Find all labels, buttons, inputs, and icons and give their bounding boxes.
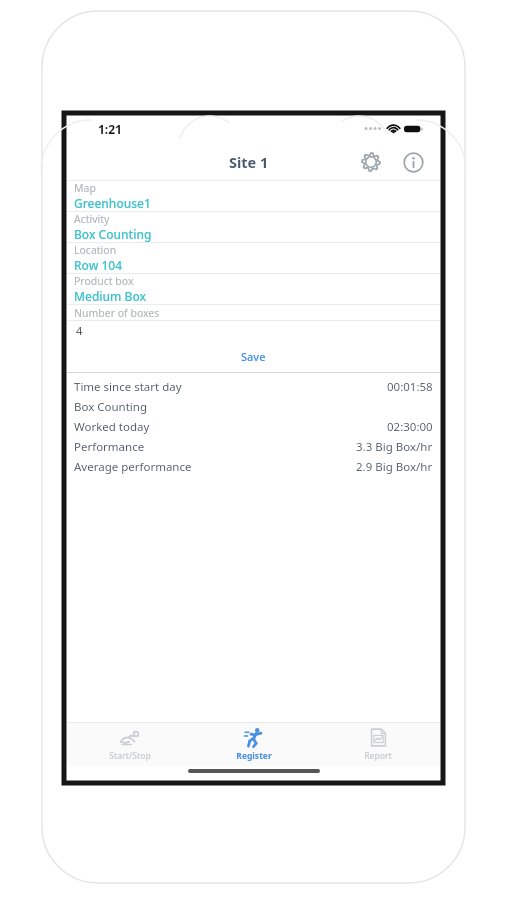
button[interactable]: Worked today	[67, 417, 440, 437]
button[interactable]: Average performance	[67, 457, 440, 477]
button[interactable]: Save	[221, 347, 286, 365]
button[interactable]: Number of boxes	[67, 304, 440, 339]
staticText: Register	[236, 750, 272, 762]
button[interactable]: Product box	[67, 273, 440, 304]
staticText: Box Counting	[74, 226, 152, 242]
button[interactable]: Time since start day	[67, 377, 440, 397]
staticText: Map	[74, 181, 96, 195]
staticText: Row 104	[74, 257, 123, 273]
button[interactable]: Map	[67, 180, 440, 211]
button[interactable]: Performance	[67, 437, 440, 457]
staticText: 02:30:00	[387, 419, 433, 435]
staticText: Start/Stop	[109, 750, 151, 762]
button[interactable]: Settings	[355, 146, 387, 178]
staticText: 2.9 Big Box/hr	[356, 459, 433, 475]
button[interactable]: Info	[397, 146, 429, 178]
staticText: Worked today	[74, 419, 150, 435]
staticText: Box Counting	[74, 399, 148, 415]
staticText: Product box	[74, 274, 134, 288]
button[interactable]: Activity	[67, 211, 440, 242]
staticText: Medium Box	[74, 288, 147, 304]
staticText: Greenhouse1	[74, 195, 151, 211]
staticText: Time since start day	[74, 379, 182, 395]
staticText: Activity	[74, 212, 110, 226]
staticText: 4	[76, 323, 83, 338]
button[interactable]: Register	[192, 723, 316, 766]
staticText: 3.3 Big Box/hr	[356, 439, 433, 455]
staticText: 00:01:58	[387, 379, 433, 395]
staticText: Save	[241, 349, 266, 363]
staticText: Report	[364, 750, 392, 762]
staticText: Site 1	[229, 152, 269, 172]
staticText: Location	[74, 243, 117, 257]
staticText: 1:21	[98, 121, 122, 137]
staticText: Number of boxes	[74, 306, 160, 320]
button[interactable]: Location	[67, 242, 440, 273]
button[interactable]: Start/Stop	[67, 723, 192, 766]
button[interactable]: Report	[316, 723, 440, 766]
button[interactable]: Box Counting	[67, 397, 440, 417]
staticText: Average performance	[74, 459, 192, 475]
staticText: Performance	[74, 439, 145, 455]
